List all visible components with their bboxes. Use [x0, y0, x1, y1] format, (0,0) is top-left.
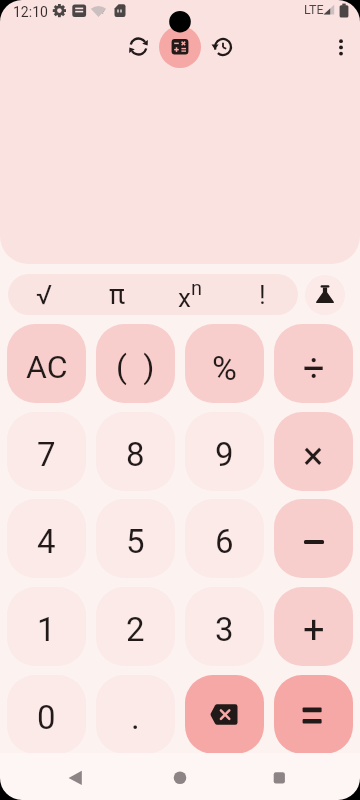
button[interactable] [202, 26, 242, 66]
staticText: 3 [215, 610, 234, 649]
staticText: ? [101, 7, 105, 16]
button[interactable]: + [274, 587, 353, 666]
staticText: + [303, 608, 325, 653]
staticText: 9 [215, 435, 234, 474]
staticText: 4 [37, 522, 56, 561]
button[interactable] [263, 763, 295, 793]
button[interactable]: × [274, 412, 353, 491]
button[interactable]: . [96, 675, 175, 754]
button[interactable] [185, 675, 264, 754]
staticText: × [303, 434, 324, 479]
button[interactable] [118, 26, 158, 66]
staticText: 8 [126, 435, 145, 474]
staticText: 2 [126, 610, 145, 649]
staticText: ( ) [116, 348, 155, 386]
button[interactable]: xn [153, 274, 226, 315]
staticText: % [212, 348, 237, 388]
staticText: ! [259, 280, 266, 310]
button[interactable] [164, 763, 196, 793]
button[interactable]: 0 [7, 675, 86, 754]
button[interactable]: 2 [96, 587, 175, 666]
button[interactable]: ( ) [96, 324, 175, 403]
button[interactable]: AC [7, 324, 86, 403]
button[interactable]: √ [8, 274, 81, 315]
staticText: . [131, 698, 140, 737]
button[interactable]: 3 [185, 587, 264, 666]
staticText: 6 [215, 522, 234, 561]
button[interactable]: 6 [185, 499, 264, 578]
button[interactable]: 7 [7, 412, 86, 491]
staticText: AC [26, 348, 68, 386]
button[interactable]: 9 [185, 412, 264, 491]
staticText: 12:10 [13, 4, 48, 20]
staticText: 0 [37, 698, 56, 737]
button[interactable]: 1 [7, 587, 86, 666]
button[interactable] [159, 26, 201, 68]
button[interactable]: ÷ [274, 324, 353, 403]
button[interactable]: 4 [7, 499, 86, 578]
staticText: √ [36, 279, 53, 311]
staticText: LTE [304, 2, 324, 17]
button[interactable]: ! [226, 274, 298, 315]
staticText: 1 [37, 610, 56, 649]
button[interactable]: % [185, 324, 264, 403]
button[interactable]: π [81, 274, 154, 315]
button[interactable] [326, 31, 356, 61]
button[interactable]: 5 [96, 499, 175, 578]
staticText: 7 [37, 435, 56, 474]
button[interactable] [305, 275, 345, 315]
staticText: ÷ [303, 346, 325, 391]
staticText: 5 [126, 522, 145, 561]
button[interactable]: 8 [96, 412, 175, 491]
staticText: π [109, 279, 126, 311]
staticText: xn [178, 276, 202, 313]
button[interactable] [274, 499, 353, 578]
button[interactable] [274, 675, 353, 754]
button[interactable] [60, 763, 92, 793]
